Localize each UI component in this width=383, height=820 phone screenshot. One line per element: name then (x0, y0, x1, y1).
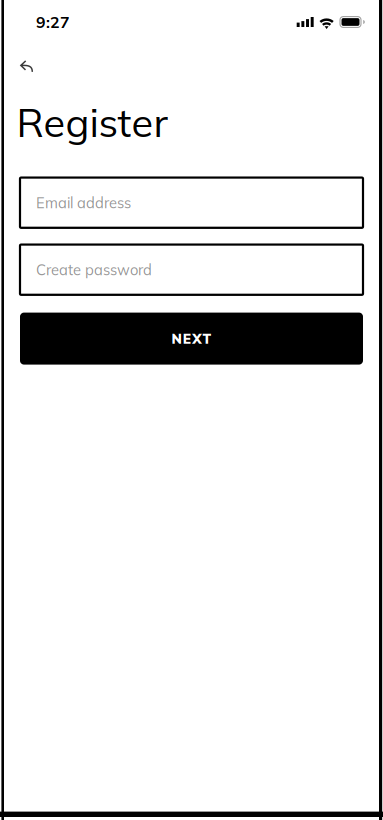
button[interactable]: Back (0, 44, 47, 81)
staticText: 9:27 (36, 12, 70, 32)
button[interactable]: N (20, 313, 363, 365)
staticText: Create password (36, 260, 152, 279)
staticText: X (192, 330, 201, 347)
staticText: Register (17, 97, 168, 147)
staticText: Email address (36, 193, 131, 212)
staticText: E (183, 330, 191, 347)
staticText: T (202, 330, 211, 347)
staticText: N (172, 330, 182, 347)
